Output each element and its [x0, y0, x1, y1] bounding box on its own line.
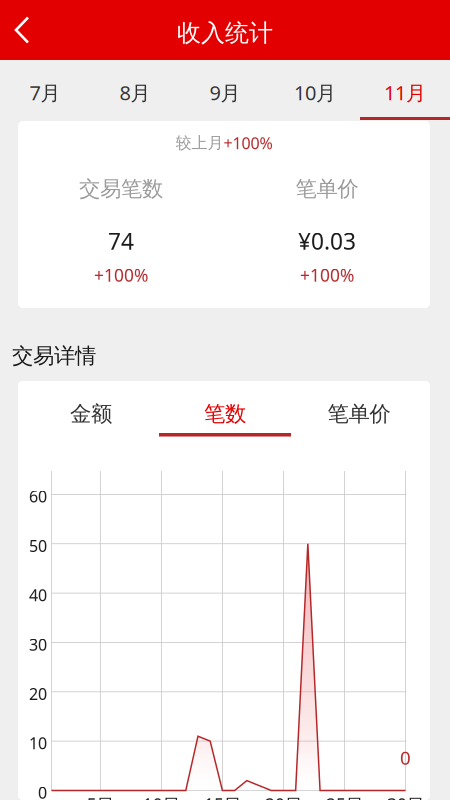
staticText: 20	[29, 683, 47, 704]
staticText: 笔单价	[327, 401, 390, 427]
staticText: 0	[38, 782, 47, 800]
button[interactable]: 7月	[0, 60, 90, 120]
staticText: 较上月	[175, 133, 223, 153]
button[interactable]: 8月	[90, 60, 180, 120]
staticText: +100%	[300, 263, 354, 286]
staticText: 10月	[294, 79, 336, 106]
staticText: 25日	[326, 793, 363, 800]
staticText: +100%	[223, 132, 272, 154]
staticText: 50	[29, 535, 47, 556]
staticText: +100%	[94, 263, 148, 286]
button[interactable]: 10月	[270, 60, 360, 120]
staticText: 15日	[204, 793, 241, 800]
button[interactable]: 9月	[180, 60, 270, 120]
staticText: 0	[400, 745, 411, 770]
staticText: 74	[108, 226, 134, 256]
staticText: 60	[29, 486, 47, 507]
staticText: 40	[29, 584, 47, 606]
button[interactable]: 笔单价	[292, 382, 426, 444]
staticText: 8月	[119, 79, 150, 106]
button[interactable]: 11月	[360, 60, 450, 120]
staticText: 20日	[265, 793, 302, 800]
staticText: ¥0.03	[298, 226, 356, 256]
staticText: 10	[29, 732, 47, 754]
staticText: 5日	[87, 793, 114, 800]
staticText: 笔数	[204, 401, 246, 427]
staticText: 11月	[384, 79, 426, 106]
staticText: 30日	[387, 793, 424, 800]
staticText: 交易笔数	[79, 176, 163, 202]
staticText: 7月	[29, 79, 60, 106]
button[interactable]: 金额	[24, 382, 158, 444]
staticText: 金额	[70, 401, 112, 427]
button[interactable]: 笔数	[158, 382, 292, 444]
staticText: 9月	[209, 79, 240, 106]
button[interactable]: 返回	[0, 0, 44, 60]
staticText: 交易详情	[12, 343, 96, 369]
staticText: 10日	[143, 793, 180, 800]
staticText: 笔单价	[295, 176, 358, 202]
staticText: 30	[29, 634, 47, 655]
staticText: 收入统计	[177, 18, 273, 48]
